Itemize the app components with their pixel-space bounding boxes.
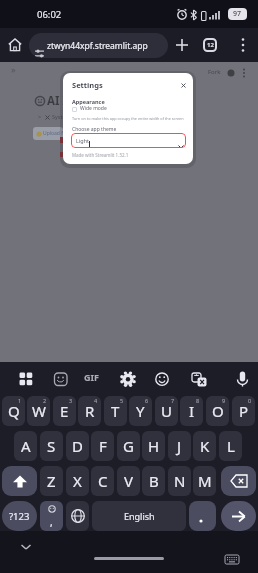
button[interactable] [72,107,77,112]
staticText: Fork [208,68,221,76]
staticText: 7 [171,397,175,404]
staticText: E [60,401,69,421]
button[interactable]: 12 [203,38,217,52]
staticText: ztwyn44xpf.streamlit.app [47,40,148,52]
staticText: F [99,436,107,456]
button[interactable]: N [168,466,191,496]
button[interactable]: J [168,431,191,461]
button[interactable] [175,38,189,52]
button[interactable] [221,501,256,531]
button[interactable]: ?123 [2,501,37,531]
staticText: M [198,471,212,491]
staticText: 1 [18,397,22,404]
staticText: O [212,401,224,421]
button[interactable]: Y [129,396,152,426]
button[interactable]: K [193,431,216,461]
button[interactable]: C [91,466,114,496]
staticText: 9 [222,397,226,404]
staticText: A [21,436,31,456]
staticText: Q [8,401,20,421]
button[interactable]: R [78,396,101,426]
button[interactable]: E [53,396,76,426]
button[interactable]: A [14,431,37,461]
button[interactable]: Z [40,466,63,496]
button[interactable]: I [180,396,203,426]
button[interactable] [225,555,239,565]
staticText: X [73,471,82,491]
staticText: Turn on to make this app occupy the enti… [72,116,184,121]
staticText: English [124,510,155,522]
staticText: B [149,471,159,491]
staticText: Upload fi [43,130,63,137]
button[interactable]: Q [2,396,25,426]
button[interactable]: English [92,501,186,531]
staticText: Choose app theme [72,126,117,133]
staticText: » [11,63,16,75]
button[interactable]: S [40,431,63,461]
staticText: 0 [248,397,252,404]
staticText: I [189,401,195,421]
staticText: W [32,401,46,421]
staticText: 4 [94,397,98,404]
staticText: C [98,471,108,491]
staticText: Z [47,471,56,491]
button[interactable]: V [117,466,140,496]
staticText: Wide mode [80,105,107,112]
button[interactable]: Light [71,133,186,148]
button[interactable]: D [66,431,89,461]
button[interactable]: P [232,396,255,426]
button[interactable]: L [219,431,242,461]
staticText: J [177,436,182,456]
button[interactable] [221,466,256,496]
staticText: , [50,515,53,529]
button[interactable]: B [142,466,165,496]
button[interactable] [189,501,216,531]
button[interactable]: O [206,396,229,426]
staticText: 5 [120,397,124,404]
staticText: 3 [69,397,73,404]
staticText: Syste [52,113,66,120]
staticText: H [148,436,160,456]
staticText: Made with Streamlit 1.52.1 [72,152,129,158]
staticText: Y [136,401,145,421]
staticText: D [72,436,83,456]
button[interactable] [20,543,32,551]
staticText: Settings [72,80,103,90]
staticText: 97 [233,9,242,19]
button[interactable]: X [66,466,89,496]
button[interactable]: G [117,431,140,461]
button[interactable] [66,501,89,531]
button[interactable]: ztwyn44xpf.streamlit.app [29,33,168,58]
staticText: R [85,401,95,421]
staticText: 06:02 [37,8,62,21]
staticText: V [124,471,134,491]
button[interactable]: F [91,431,114,461]
button[interactable]: M [193,466,216,496]
button[interactable] [7,37,23,53]
staticText: Appearance [72,98,105,105]
staticText: G [123,436,134,456]
staticText: > [38,113,42,120]
button[interactable]: U [155,396,178,426]
staticText: 8 [196,397,200,404]
staticText: K [200,436,210,456]
button[interactable] [238,37,248,53]
staticText: L [227,436,235,456]
staticText: P [239,401,249,421]
staticText: U [161,401,172,421]
staticText: 12 [207,41,214,49]
button[interactable] [181,83,186,88]
button[interactable] [2,466,37,496]
staticText: 2 [43,397,47,404]
staticText: GIF [84,371,99,383]
button[interactable]: W [27,396,50,426]
staticText: N [174,471,186,491]
button[interactable]: H [142,431,165,461]
staticText: 6 [145,397,149,404]
staticText: AI I [47,93,67,109]
button[interactable]: T [104,396,127,426]
button[interactable]: , [40,501,63,531]
staticText: S [47,436,56,456]
staticText: Light [76,137,90,144]
staticText: ?123 [9,510,30,523]
